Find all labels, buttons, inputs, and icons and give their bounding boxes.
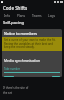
staticText: Plans xyxy=(17,14,26,18)
button[interactable]: Info xyxy=(1,13,14,19)
button[interactable]: Plans xyxy=(14,13,29,19)
staticText: Logs xyxy=(48,14,56,18)
staticText: Notice to members xyxy=(4,31,38,36)
button[interactable]: Save xyxy=(4,76,14,77)
staticText: Code Shifts xyxy=(3,5,28,11)
staticText: Take number xyxy=(4,67,20,71)
button[interactable]: Set a curve of your own to make the fit.… xyxy=(2,37,62,51)
staticText: If there's the site of xyxy=(3,86,29,90)
staticText: Teams xyxy=(32,14,42,18)
staticText: Self-pacing xyxy=(3,20,25,25)
button[interactable]: Teams xyxy=(29,13,45,19)
staticText: Info xyxy=(4,14,11,18)
staticText: Media synchronisation xyxy=(4,58,41,63)
button[interactable]: Ok xyxy=(52,76,60,77)
staticText: Set a curve of your own to make the fit.… xyxy=(4,38,60,48)
staticText: the set xyxy=(3,91,12,95)
button[interactable]: Logs xyxy=(45,13,59,19)
